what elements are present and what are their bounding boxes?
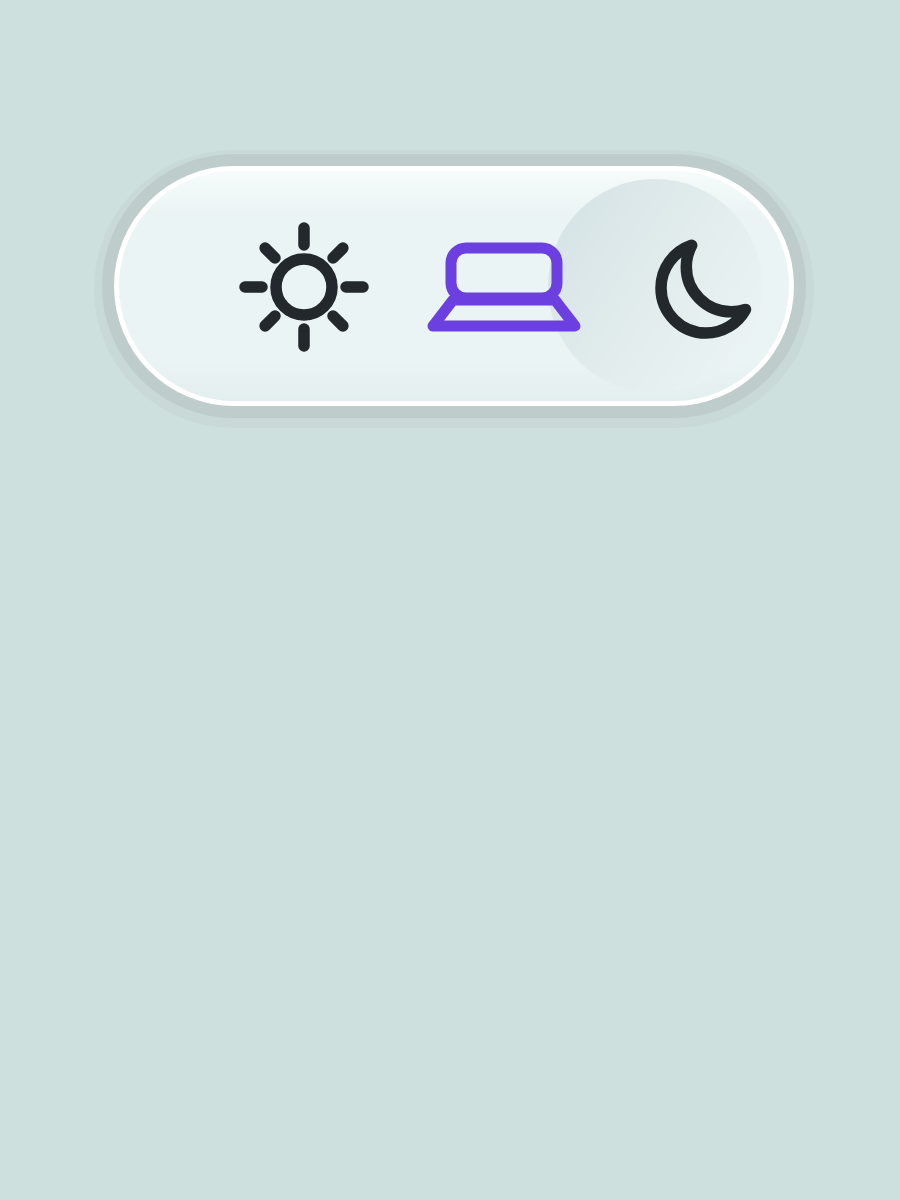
button[interactable]: Theme mode switch — [92, 144, 816, 428]
button[interactable]: System mode — [439, 222, 569, 352]
button[interactable]: Light mode — [239, 222, 369, 352]
button[interactable]: Dark mode — [641, 222, 771, 352]
